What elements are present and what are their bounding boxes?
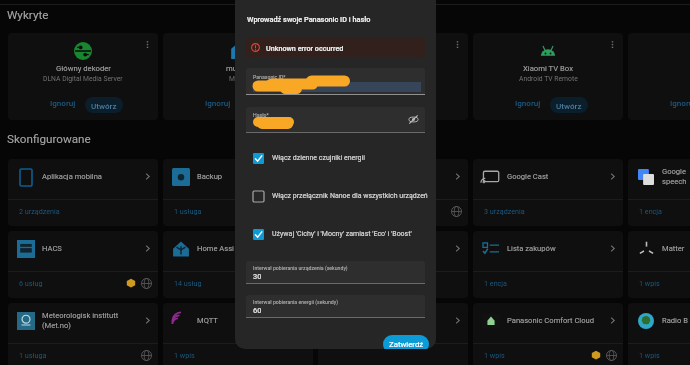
button[interactable]: Matter (628, 231, 690, 298)
staticText: 1 encja (484, 279, 507, 287)
staticText: Panasonic ID* (253, 74, 286, 80)
staticText: 1 wpis (639, 351, 660, 359)
staticText: 1 usługa (19, 351, 47, 359)
staticText (352, 244, 451, 253)
button[interactable]: Włącz przełącznik Nanoe dla wszystkich u… (246, 189, 436, 203)
button[interactable] (318, 231, 468, 298)
button[interactable]: HACS (8, 231, 158, 298)
staticText: Meteorologisk institutt (Met.no) (42, 311, 141, 330)
button[interactable]: Panasonic Comfort Cloud (473, 303, 623, 365)
button[interactable]: music_ (163, 33, 313, 120)
button[interactable]: Show password (408, 114, 419, 125)
button[interactable]: Utwórz (395, 97, 433, 113)
button[interactable]: Ignoruj (510, 94, 546, 111)
staticText: Ignoruj (670, 98, 690, 107)
staticText: Lista zakupów (507, 244, 606, 253)
button[interactable]: Home Assi (163, 231, 313, 298)
staticText: Używaj 'Cichy' i 'Mocny' zamiast 'Eco' i… (272, 230, 412, 238)
staticText: music_ (226, 64, 251, 73)
staticText: Utwórz (91, 101, 117, 110)
button[interactable]: Aplikacja mobilna (8, 159, 158, 226)
staticText: Music (229, 75, 248, 83)
button[interactable]: More options (297, 39, 308, 50)
staticText: DLNA Digital Media Server (43, 75, 123, 83)
staticText: Interwał pobierania urządzenia (sekundy) (253, 265, 348, 271)
staticText: 1 wpis (484, 351, 505, 359)
staticText: 2 urządzenia (19, 207, 60, 215)
staticText (352, 172, 451, 181)
button[interactable]: Główny dekoder (8, 33, 158, 120)
button[interactable] (318, 159, 468, 226)
staticText: Wykryte (7, 8, 49, 22)
button[interactable] (318, 303, 468, 365)
staticText: Android TV Remote (519, 75, 578, 83)
staticText: Skonfigurowane (7, 132, 91, 146)
staticText: Włącz dzienne czujniki energii (272, 154, 365, 162)
button[interactable]: Hasło* (246, 107, 425, 132)
button[interactable]: Utwórz (85, 97, 123, 113)
staticText: Backup (197, 172, 296, 181)
button[interactable]: Ignoruj (665, 94, 690, 111)
button[interactable]: Lista zakupów (473, 231, 623, 298)
button[interactable]: Backup (163, 159, 313, 226)
staticText: Interwał pobierania energii (sekundy) (253, 299, 338, 305)
button[interactable]: Meteorologisk institutt (Met.no) (8, 303, 158, 365)
button[interactable]: Google Cast (473, 159, 623, 226)
staticText: Ignoruj (515, 98, 541, 107)
staticText: Utwórz (246, 101, 272, 110)
staticText: Google speech (662, 167, 690, 186)
staticText: Google Cast (507, 172, 606, 181)
button[interactable]: Xiaomi TV Box (473, 33, 623, 120)
button[interactable]: Używaj 'Cichy' i 'Mocny' zamiast 'Eco' i… (246, 227, 436, 241)
staticText: Matter (662, 244, 690, 253)
staticText: Wprowadź swoje Panasonic ID i hasło (247, 15, 371, 24)
staticText: MQTT (197, 316, 296, 325)
button[interactable]: More options (607, 39, 618, 50)
staticText: Zatwierdź (389, 340, 424, 349)
button[interactable]: Ignoruj (628, 33, 690, 120)
staticText: 60 (253, 306, 262, 315)
staticText: Unknown error occurred (266, 44, 344, 52)
staticText: 1 encja (639, 207, 662, 215)
staticText (352, 316, 451, 325)
staticText: 1 wpis (174, 351, 195, 359)
staticText: Włącz przełącznik Nanoe dla wszystkich u… (272, 192, 428, 200)
staticText: Home Assi (197, 244, 296, 253)
button[interactable]: Interwał pobierania urządzenia (sekundy) (246, 261, 425, 283)
button[interactable]: Google speech (628, 159, 690, 226)
staticText: Utwórz (556, 101, 582, 110)
staticText: Ignoruj (205, 98, 231, 107)
staticText: HACS (42, 244, 141, 253)
button[interactable]: Interwał pobierania energii (sekundy) (246, 295, 425, 317)
button[interactable]: More options (452, 39, 463, 50)
button[interactable]: Ignoruj (200, 94, 236, 111)
staticText: 1 wpis (639, 279, 660, 287)
staticText: Aplikacja mobilna (42, 172, 141, 181)
button[interactable]: Ignoruj (355, 94, 391, 111)
staticText: 1 usługa (174, 207, 202, 215)
button[interactable]: Utwórz (550, 97, 588, 113)
staticText: 30 (253, 272, 262, 281)
staticText: Utwórz (401, 101, 427, 110)
button[interactable]: Radio B (628, 303, 690, 365)
button[interactable]: MQTT (163, 303, 313, 365)
staticText: 14 usług (174, 279, 202, 287)
staticText: 3 urządzenia (484, 207, 525, 215)
staticText: Główny dekoder (56, 64, 111, 73)
button[interactable]: Włącz dzienne czujniki energii (246, 151, 436, 165)
staticText: Panasonic Comfort Cloud (507, 316, 606, 325)
button[interactable]: Ignoruj (318, 33, 468, 120)
staticText: Ignoruj (50, 98, 76, 107)
staticText: 6 usług (19, 279, 43, 287)
staticText: Xiaomi TV Box (523, 64, 573, 73)
button[interactable]: Panasonic ID* (246, 68, 425, 94)
button[interactable]: Ignoruj (45, 94, 81, 111)
button[interactable]: Utwórz (240, 97, 278, 113)
staticText: Hasło* (253, 112, 269, 118)
button[interactable]: Zatwierdź (383, 335, 429, 349)
staticText: Radio B (662, 316, 690, 325)
button[interactable]: More options (142, 39, 153, 50)
